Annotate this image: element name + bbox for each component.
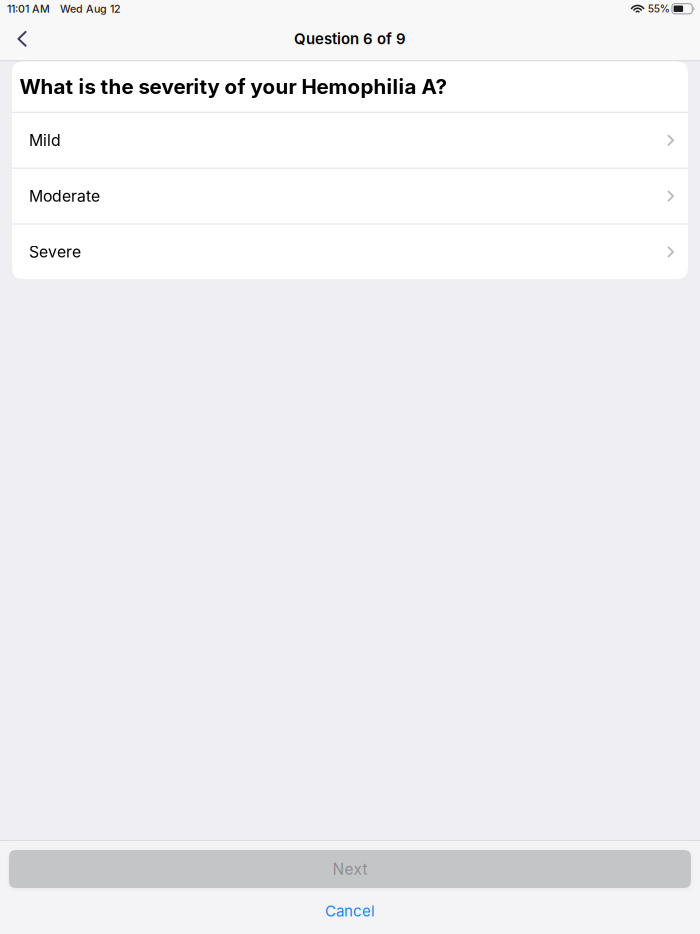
staticText: Next: [332, 860, 367, 878]
button[interactable]: Back: [3, 21, 41, 56]
staticText: Mild: [29, 131, 61, 150]
staticText: 11:01 AM: [7, 2, 50, 15]
staticText: What is the severity of your Hemophilia …: [19, 74, 447, 99]
button[interactable]: Cancel: [0, 888, 700, 934]
button[interactable]: Mild: [12, 113, 688, 168]
staticText: Moderate: [29, 187, 100, 206]
staticText: Question 6 of 9: [294, 30, 406, 48]
button[interactable]: Severe: [12, 225, 688, 279]
staticText: Severe: [29, 242, 81, 261]
staticText: Cancel: [325, 902, 375, 920]
staticText: 55%: [648, 3, 670, 15]
staticText: Wed Aug 12: [60, 2, 121, 15]
button[interactable]: Moderate: [12, 169, 688, 223]
button[interactable]: Next: [9, 850, 691, 888]
